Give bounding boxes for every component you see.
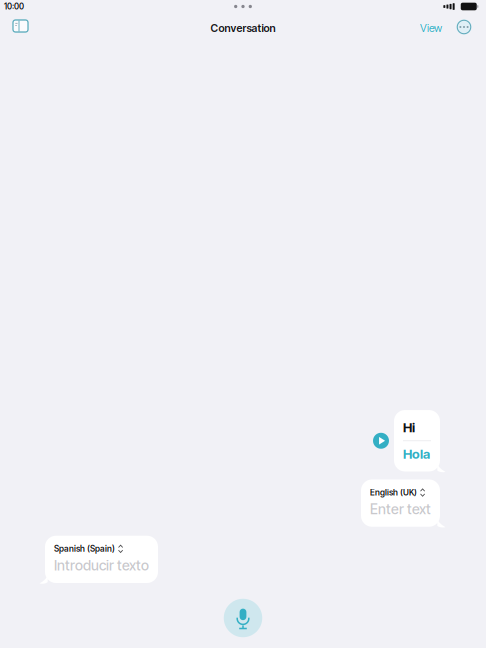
button[interactable]: Play translation [373, 433, 389, 449]
staticText: View [420, 21, 442, 34]
staticText: Spanish (Spain) [54, 544, 115, 554]
staticText: 10:00 [4, 2, 24, 11]
staticText: Enter text [370, 501, 431, 518]
staticText: Introducir texto [54, 557, 149, 574]
button[interactable]: Show Sidebar [7, 15, 34, 41]
button[interactable]: Record [223, 598, 263, 638]
staticText: English (UK) [370, 487, 417, 498]
staticText: Hola [403, 446, 430, 462]
staticText: Hi [403, 420, 415, 435]
button[interactable]: More [447, 13, 475, 43]
button[interactable]: View [415, 15, 447, 40]
staticText: Conversation [210, 21, 275, 34]
